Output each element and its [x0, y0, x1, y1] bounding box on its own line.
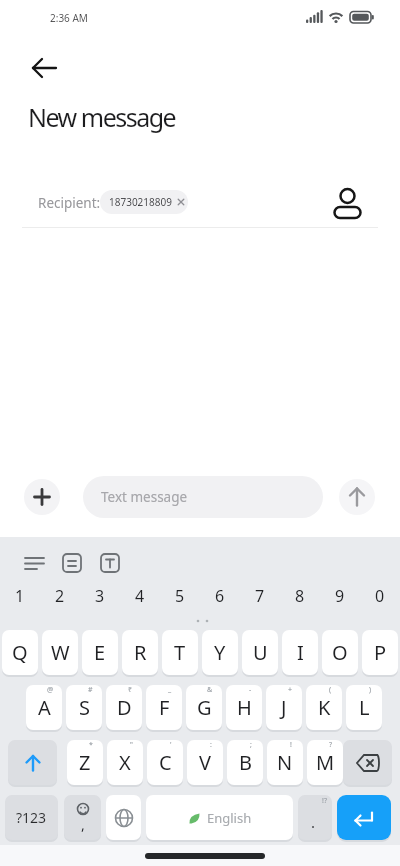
- button[interactable]: H: [226, 685, 262, 730]
- staticText: -: [249, 685, 252, 695]
- button[interactable]: [8, 740, 57, 785]
- staticText: Y: [214, 639, 226, 666]
- button[interactable]: D: [106, 685, 142, 730]
- staticText: #: [88, 685, 93, 695]
- button[interactable]: [343, 740, 392, 785]
- button[interactable]: J: [266, 685, 302, 730]
- button[interactable]: Q: [2, 630, 38, 675]
- staticText: ₹: [128, 685, 133, 695]
- staticText: A: [38, 694, 51, 721]
- button[interactable]: 7: [240, 583, 280, 609]
- staticText: O: [332, 639, 348, 666]
- staticText: U: [253, 639, 268, 666]
- staticText: Z: [79, 749, 91, 776]
- button[interactable]: .: [298, 795, 332, 840]
- button[interactable]: 3: [80, 583, 120, 609]
- staticText: 2: [55, 585, 65, 607]
- staticText: ?: [329, 740, 333, 750]
- button[interactable]: B: [227, 740, 263, 785]
- button[interactable]: 18730218809: [100, 190, 188, 214]
- button[interactable]: U: [242, 630, 278, 675]
- button[interactable]: V: [187, 740, 223, 785]
- button[interactable]: N: [267, 740, 303, 785]
- button[interactable]: O: [322, 630, 358, 675]
- staticText: +: [288, 685, 293, 695]
- button[interactable]: 4: [120, 583, 160, 609]
- staticText: G: [197, 694, 212, 721]
- staticText: Recipient:: [38, 194, 101, 212]
- staticText: 1: [15, 585, 25, 607]
- button[interactable]: [106, 795, 141, 840]
- button[interactable]: 2: [40, 583, 80, 609]
- staticText: Q: [12, 639, 28, 666]
- staticText: J: [281, 694, 287, 721]
- button[interactable]: Z: [67, 740, 103, 785]
- button[interactable]: [24, 479, 60, 515]
- staticText: N: [277, 749, 293, 776]
- button[interactable]: S: [66, 685, 102, 730]
- staticText: ,: [81, 815, 85, 834]
- staticText: :: [210, 740, 212, 750]
- button[interactable]: 1: [0, 583, 40, 609]
- button[interactable]: 5: [160, 583, 200, 609]
- button[interactable]: M: [307, 740, 343, 785]
- button[interactable]: [339, 479, 375, 515]
- button[interactable]: C: [147, 740, 183, 785]
- button[interactable]: X: [107, 740, 143, 785]
- button[interactable]: F: [146, 685, 182, 730]
- staticText: 5: [175, 585, 185, 607]
- button[interactable]: K: [306, 685, 342, 730]
- staticText: (: [329, 685, 332, 695]
- staticText: *: [89, 740, 93, 750]
- staticText: E: [94, 639, 106, 666]
- button[interactable]: P: [362, 630, 398, 675]
- staticText: ): [369, 685, 372, 695]
- button[interactable]: R: [122, 630, 158, 675]
- staticText: !?: [322, 796, 327, 806]
- button[interactable]: 0: [360, 583, 400, 609]
- button[interactable]: [26, 52, 62, 84]
- button[interactable]: T: [162, 630, 198, 675]
- button[interactable]: [92, 545, 128, 581]
- staticText: ": [130, 740, 133, 750]
- button[interactable]: I: [282, 630, 318, 675]
- button[interactable]: 8: [280, 583, 320, 609]
- staticText: L: [359, 694, 370, 721]
- staticText: R: [134, 639, 147, 666]
- button[interactable]: W: [42, 630, 78, 675]
- button[interactable]: [337, 795, 391, 840]
- staticText: I: [297, 639, 304, 666]
- button[interactable]: Y: [202, 630, 238, 675]
- button[interactable]: ?123: [5, 795, 58, 840]
- staticText: F: [159, 694, 170, 721]
- button[interactable]: E: [82, 630, 118, 675]
- button[interactable]: 9: [320, 583, 360, 609]
- button[interactable]: [54, 545, 90, 581]
- staticText: H: [237, 694, 252, 721]
- button[interactable]: ,: [64, 795, 101, 840]
- staticText: M: [316, 749, 335, 776]
- button[interactable]: L: [346, 685, 382, 730]
- staticText: 18730218809: [109, 195, 172, 209]
- staticText: &: [207, 685, 213, 695]
- staticText: X: [119, 749, 131, 776]
- staticText: ': [170, 740, 172, 750]
- button[interactable]: [330, 183, 364, 221]
- button[interactable]: Text message: [83, 476, 323, 518]
- staticText: 3: [95, 585, 105, 607]
- button[interactable]: [16, 545, 54, 581]
- button[interactable]: 6: [200, 583, 240, 609]
- staticText: .: [311, 812, 316, 832]
- button[interactable]: G: [186, 685, 222, 730]
- staticText: B: [239, 749, 252, 776]
- staticText: !: [290, 740, 292, 750]
- staticText: T: [174, 639, 186, 666]
- staticText: 4: [135, 585, 145, 607]
- staticText: 7: [255, 585, 265, 607]
- staticText: Text message: [101, 488, 188, 506]
- button[interactable]: A: [26, 685, 62, 730]
- staticText: New message: [28, 100, 176, 134]
- staticText: _: [168, 685, 172, 695]
- button[interactable]: English: [146, 795, 293, 840]
- staticText: 8: [295, 585, 305, 607]
